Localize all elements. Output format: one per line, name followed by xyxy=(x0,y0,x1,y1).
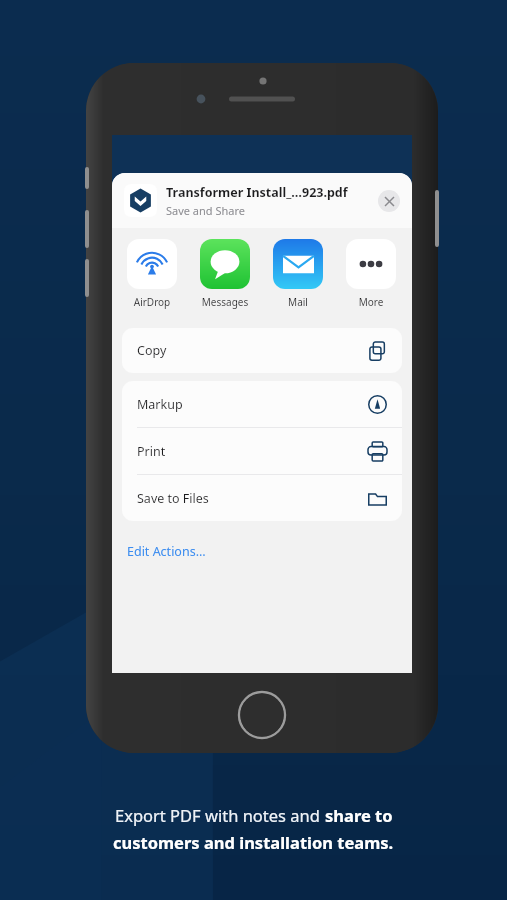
button[interactable]: Close xyxy=(378,190,400,212)
staticText: Messages xyxy=(200,295,250,309)
button[interactable]: More xyxy=(346,239,396,309)
staticText: Copy xyxy=(137,342,367,359)
button[interactable]: Markup xyxy=(122,381,402,427)
button[interactable]: Save to Files xyxy=(122,475,402,521)
staticText: share to xyxy=(325,804,393,826)
staticText: Save and Share xyxy=(166,203,245,218)
staticText: Edit Actions… xyxy=(127,543,206,560)
staticText: customers and installation teams. xyxy=(113,831,394,853)
staticText: Transformer Install_…923.pdf xyxy=(166,184,348,201)
button[interactable]: Transformer Install_…923.pdf xyxy=(112,173,412,228)
button[interactable]: Messages xyxy=(200,239,250,309)
staticText: Print xyxy=(137,443,367,460)
button[interactable]: Edit Actions… xyxy=(112,538,412,564)
button[interactable]: Copy xyxy=(122,328,402,373)
staticText: Save to Files xyxy=(137,490,367,507)
button[interactable]: Print xyxy=(122,428,402,474)
staticText: Export PDF with notes and xyxy=(115,804,325,826)
staticText: Mail xyxy=(273,295,323,309)
staticText: More xyxy=(346,295,396,309)
button[interactable]: Mail xyxy=(273,239,323,309)
button[interactable]: AirDrop xyxy=(127,239,177,309)
staticText: Markup xyxy=(137,396,367,413)
staticText: AirDrop xyxy=(127,295,177,309)
